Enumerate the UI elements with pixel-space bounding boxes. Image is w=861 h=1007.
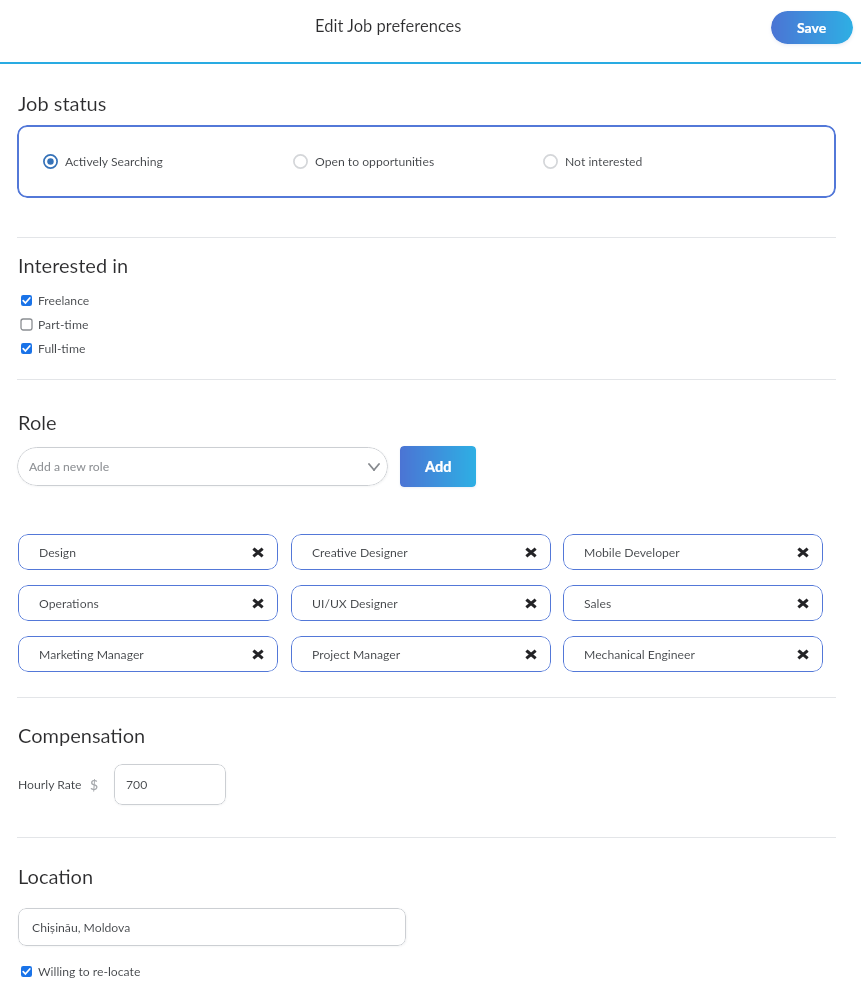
staticText: Add: [425, 458, 452, 475]
staticText: Job status: [18, 91, 107, 115]
staticText: Not interested: [565, 154, 643, 169]
button[interactable]: Operations: [18, 585, 278, 621]
staticText: Add a new role: [29, 459, 110, 474]
staticText: Sales: [584, 596, 612, 611]
staticText: Mobile Developer: [584, 545, 680, 560]
staticText: Full-time: [38, 341, 86, 356]
other: Remove Creative Designer: [526, 548, 536, 557]
other: Remove Marketing Manager: [253, 650, 263, 659]
button[interactable]: 700: [114, 764, 226, 805]
other: Remove Mobile Developer: [798, 548, 808, 557]
staticText: Mechanical Engineer: [584, 647, 695, 662]
other: Remove Design: [253, 548, 263, 557]
staticText: Location: [18, 864, 94, 888]
other: Remove Project Manager: [526, 650, 536, 659]
other: Remove Mechanical Engineer: [798, 650, 808, 659]
staticText: Interested in: [18, 253, 129, 277]
button[interactable]: Not interested: [543, 154, 643, 169]
staticText: Operations: [39, 596, 99, 611]
staticText: Actively Searching: [65, 154, 163, 169]
button[interactable]: Creative Designer: [291, 534, 551, 570]
button[interactable]: Add: [400, 446, 476, 487]
staticText: Hourly Rate: [18, 777, 82, 792]
button[interactable]: Part-time: [21, 317, 89, 332]
button[interactable]: Sales: [563, 585, 823, 621]
button[interactable]: Design: [18, 534, 278, 570]
button[interactable]: Add a new role: [17, 447, 388, 486]
button[interactable]: Chișinău, Moldova: [18, 908, 406, 946]
button[interactable]: Willing to re-locate: [21, 964, 141, 979]
staticText: Save: [797, 19, 827, 36]
button[interactable]: UI/UX Designer: [291, 585, 551, 621]
staticText: Project Manager: [312, 647, 401, 662]
staticText: Marketing Manager: [39, 647, 144, 662]
staticText: Part-time: [38, 317, 89, 332]
other: Expand role options: [369, 464, 379, 470]
staticText: Creative Designer: [312, 545, 408, 560]
staticText: Role: [18, 410, 57, 434]
button[interactable]: Open to opportunities: [293, 154, 543, 169]
button[interactable]: Mobile Developer: [563, 534, 823, 570]
staticText: Chișinău, Moldova: [32, 920, 131, 935]
button[interactable]: Save: [771, 11, 853, 44]
staticText: Edit Job preferences: [315, 16, 462, 36]
staticText: Design: [39, 545, 76, 560]
button[interactable]: Project Manager: [291, 636, 551, 672]
button[interactable]: Actively Searching: [43, 154, 293, 169]
staticText: UI/UX Designer: [312, 596, 398, 611]
other: Remove Sales: [798, 599, 808, 608]
staticText: Freelance: [38, 293, 90, 308]
other: Remove Operations: [253, 599, 263, 608]
staticText: 700: [126, 777, 148, 792]
staticText: Willing to re-locate: [38, 964, 141, 979]
staticText: Compensation: [18, 723, 146, 747]
staticText: $: [90, 776, 99, 793]
button[interactable]: Freelance: [21, 293, 90, 308]
other: Remove UI/UX Designer: [526, 599, 536, 608]
button[interactable]: Full-time: [21, 341, 86, 356]
button[interactable]: Mechanical Engineer: [563, 636, 823, 672]
staticText: Open to opportunities: [315, 154, 435, 169]
button[interactable]: Marketing Manager: [18, 636, 278, 672]
